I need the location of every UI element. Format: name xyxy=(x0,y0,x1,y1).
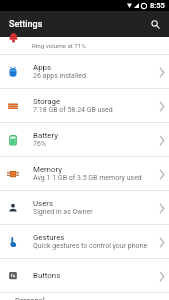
staticText: Signed in as Owner xyxy=(33,208,93,216)
button[interactable]: Battery xyxy=(0,123,169,157)
staticText: Battery xyxy=(33,131,59,140)
button[interactable]: Storage xyxy=(0,89,169,123)
staticText: Users xyxy=(33,199,54,208)
staticText: Personal xyxy=(15,296,45,300)
button[interactable]: Apps xyxy=(0,55,169,89)
button[interactable]: Gestures xyxy=(0,225,169,259)
button[interactable]: Users xyxy=(0,191,169,225)
staticText: Avg 1.1 GB of 3.5 GB memory used xyxy=(33,174,142,182)
staticText: Ring volume at 71% xyxy=(32,42,86,49)
staticText: Settings xyxy=(9,19,43,30)
staticText: 76% xyxy=(33,140,46,148)
staticText: 8:55 xyxy=(150,1,165,10)
button[interactable]: Memory xyxy=(0,157,169,191)
button[interactable]: Ring volume at 71% xyxy=(0,37,169,55)
button[interactable]: Buttons xyxy=(0,259,169,293)
staticText: Buttons xyxy=(33,271,61,280)
staticText: Gestures xyxy=(33,233,65,242)
staticText: Apps xyxy=(33,63,52,72)
staticText: Storage xyxy=(33,97,61,106)
staticText: 7.18 GB of 58.24 GB used xyxy=(33,106,113,114)
staticText: 26 apps installed xyxy=(33,72,86,80)
staticText: Memory xyxy=(33,165,62,174)
staticText: Quick gestures to control your phone xyxy=(33,242,148,250)
button[interactable]: Search xyxy=(146,15,164,33)
